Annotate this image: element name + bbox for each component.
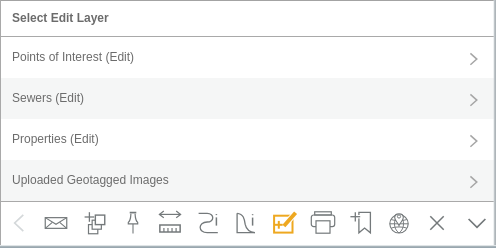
staticText: Uploaded Geotagged Images [12, 173, 169, 186]
button[interactable]: Mail [37, 202, 75, 248]
button[interactable]: Back [0, 202, 38, 248]
button[interactable]: Collapse [458, 202, 496, 248]
button[interactable]: Uploaded Geotagged Images [0, 160, 496, 201]
button[interactable]: Pin [114, 202, 152, 248]
button[interactable]: Add bookmark [342, 202, 380, 248]
button[interactable]: Sewer info [190, 202, 228, 248]
button[interactable]: Close [418, 202, 456, 248]
button[interactable]: Chart info [227, 202, 265, 248]
button[interactable]: Points of Interest (Edit) [0, 37, 496, 78]
staticText: Sewers (Edit) [12, 91, 85, 104]
staticText: Select Edit Layer [12, 11, 109, 24]
button[interactable]: Measure [151, 202, 189, 248]
button[interactable]: Map [380, 202, 418, 248]
button[interactable]: Properties (Edit) [0, 119, 496, 160]
staticText: Properties (Edit) [12, 132, 99, 145]
button[interactable]: Print [304, 202, 342, 248]
button[interactable]: Add feature [264, 202, 302, 248]
button[interactable]: Sewers (Edit) [0, 78, 496, 119]
button[interactable]: Add layer [76, 202, 114, 248]
staticText: Points of Interest (Edit) [12, 50, 135, 63]
